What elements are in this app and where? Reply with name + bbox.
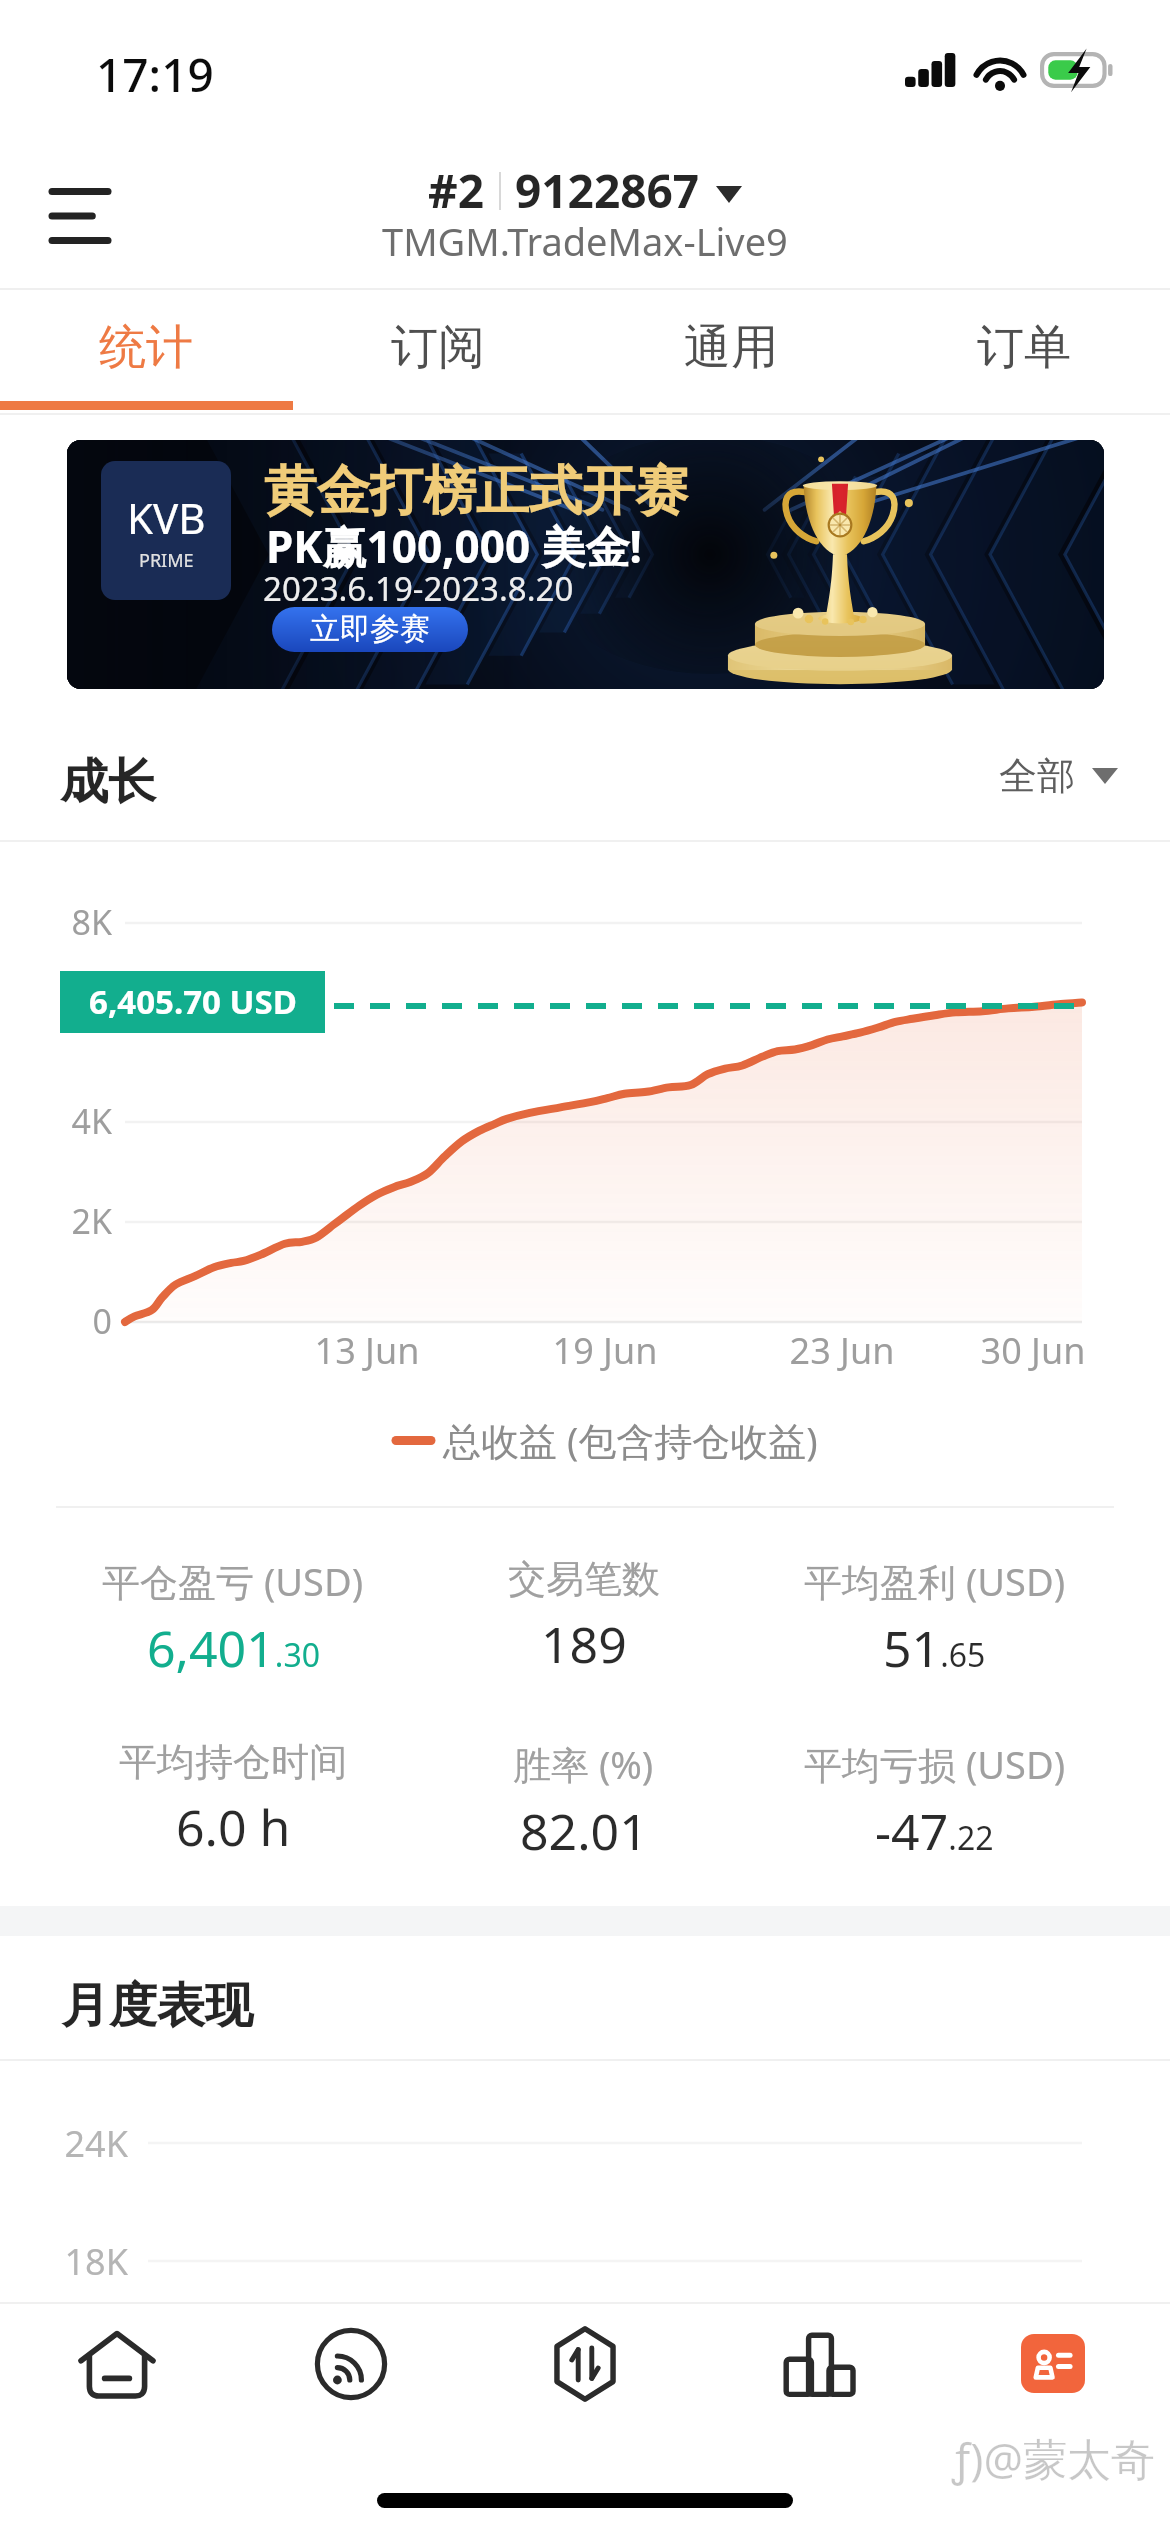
staticText: 月度表现: [61, 1976, 253, 2036]
staticText: 24K: [46, 2119, 128, 2168]
staticText: 平均亏损 (USD): [804, 1738, 1066, 1790]
staticText: 17:19: [96, 43, 214, 106]
staticText: 4K: [52, 1098, 112, 1144]
staticText: 6,401.30: [147, 1614, 320, 1682]
staticText: 23 Jun: [762, 1326, 922, 1375]
staticText: 立即参赛: [310, 610, 430, 648]
staticText: 51.65: [883, 1614, 986, 1682]
staticText: 平仓盈亏 (USD): [102, 1555, 364, 1607]
staticText: 189: [541, 1610, 627, 1678]
staticText: TMGM.TradeMax-Live9: [382, 215, 788, 267]
staticText: 2K: [52, 1198, 112, 1244]
button[interactable]: Statistics: [702, 2302, 936, 2462]
staticText: 成长: [60, 752, 156, 812]
staticText: 通用: [684, 318, 778, 377]
button[interactable]: Account: [936, 2302, 1170, 2462]
button[interactable]: 通用: [584, 288, 877, 398]
staticText: 总收益 (包含持仓收益): [443, 1414, 818, 1466]
button[interactable]: Signals: [234, 2302, 468, 2462]
staticText: 6.0 h: [176, 1793, 291, 1861]
staticText: 13 Jun: [287, 1326, 447, 1375]
staticText: 黄金打榜正式开赛: [264, 458, 688, 525]
button[interactable]: 全部: [999, 752, 1118, 800]
staticText: 6,405.70 USD: [89, 979, 297, 1024]
staticText: 19 Jun: [525, 1326, 685, 1375]
staticText: 0: [52, 1298, 112, 1344]
staticText: KVB: [127, 489, 206, 546]
staticText: 82.01: [520, 1797, 648, 1865]
staticText: 订单: [977, 318, 1071, 377]
staticText: -47.22: [875, 1797, 994, 1865]
staticText: 9122867: [515, 159, 700, 222]
button[interactable]: Trade: [468, 2302, 702, 2462]
button[interactable]: Home: [0, 2302, 234, 2462]
button[interactable]: Menu: [20, 158, 140, 268]
staticText: PK赢100,000 美金!: [266, 516, 642, 576]
button[interactable]: 统计: [0, 288, 292, 398]
staticText: 2023.6.19-2023.8.20: [263, 566, 574, 611]
staticText: 平均盈利 (USD): [804, 1555, 1066, 1607]
staticText: 全部: [999, 752, 1075, 800]
staticText: 订阅: [391, 318, 485, 377]
button[interactable]: #2: [428, 159, 742, 222]
staticText: PRIME: [139, 548, 194, 573]
button[interactable]: 订阅: [292, 288, 584, 398]
button[interactable]: Promo banner: [67, 440, 1104, 689]
staticText: 胜率 (%): [513, 1738, 654, 1790]
staticText: 平均持仓时间: [119, 1738, 347, 1786]
staticText: 统计: [99, 318, 193, 377]
button[interactable]: 订单: [877, 288, 1170, 398]
staticText: 30 Jun: [953, 1326, 1113, 1375]
button[interactable]: 立即参赛: [272, 607, 468, 652]
staticText: 8K: [52, 899, 112, 945]
staticText: 18K: [46, 2237, 128, 2286]
staticText: ƒ)@蒙太奇: [952, 2428, 1155, 2488]
staticText: #2: [428, 159, 485, 222]
staticText: 交易笔数: [508, 1555, 660, 1603]
